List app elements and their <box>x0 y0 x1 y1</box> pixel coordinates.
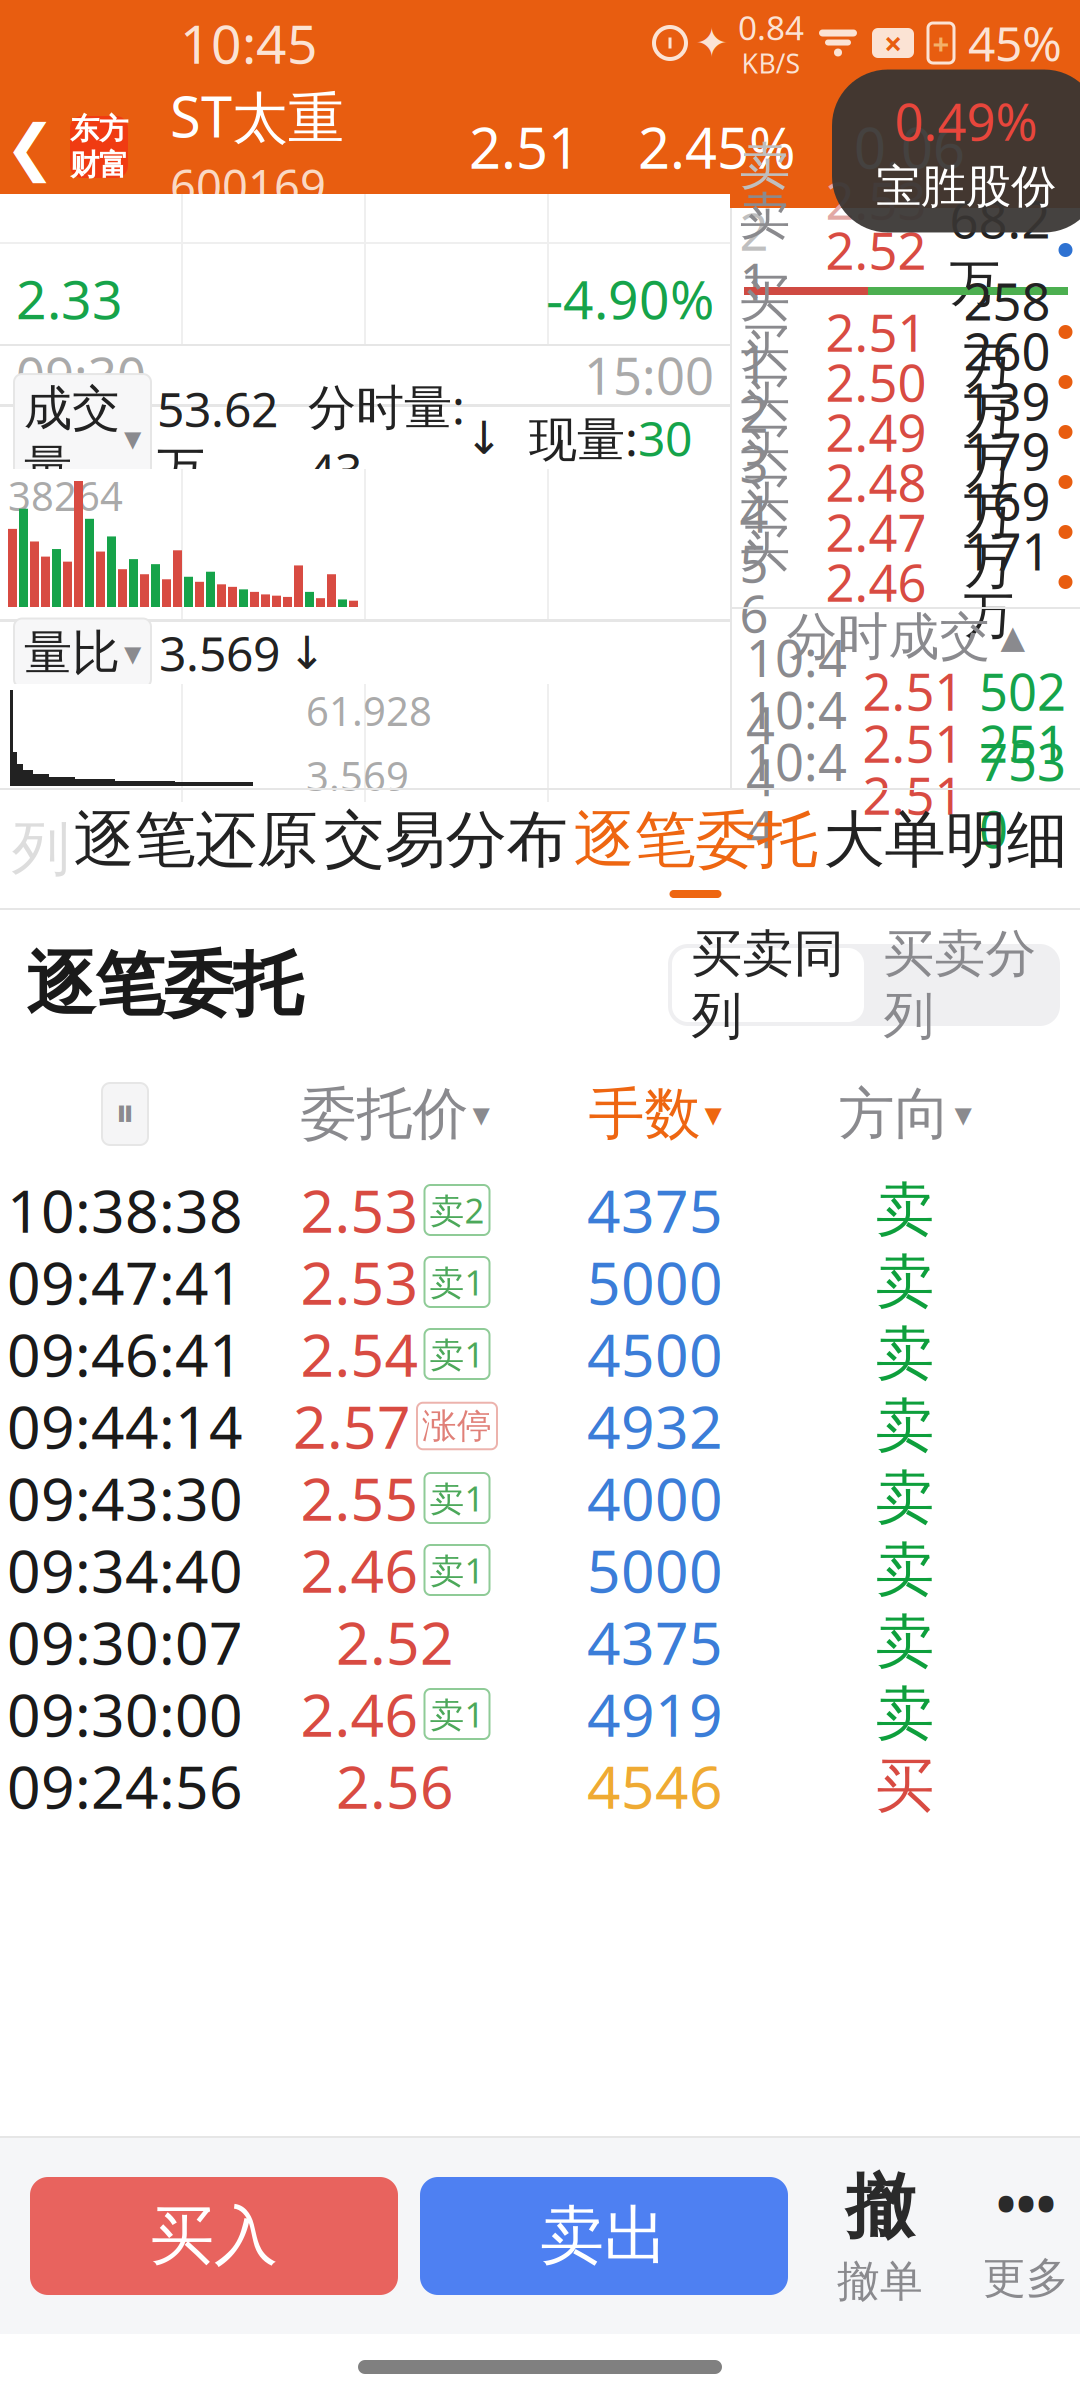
staticText: 30 <box>638 406 692 470</box>
button[interactable]: 量比 <box>14 618 151 687</box>
staticText: 卖2 <box>739 135 790 265</box>
staticText: 买4 <box>739 417 790 547</box>
staticText: 0.49% <box>894 87 1037 155</box>
staticText: ▾ <box>704 1094 721 1134</box>
staticText: 2.53 <box>300 1243 418 1321</box>
staticText: 涨停 <box>422 1405 492 1447</box>
staticText: 卖 <box>875 1318 934 1390</box>
staticText: 5000 <box>587 1243 723 1321</box>
staticText: 15:00 <box>584 341 714 409</box>
staticText: 宝胜股份 <box>876 159 1056 214</box>
staticText: 169万 <box>963 467 1050 597</box>
button[interactable]: 逐笔委托 <box>570 790 820 908</box>
staticText: 7530 <box>979 728 1066 862</box>
button[interactable]: 卖出 <box>420 2177 788 2295</box>
staticText: 卖出 <box>540 2197 668 2275</box>
staticText: 4000 <box>587 1459 723 1537</box>
staticText: 卖2 <box>429 1187 484 1233</box>
staticText: 卖1 <box>429 1691 484 1737</box>
staticText: 2.51 <box>469 110 580 184</box>
staticText: 卖1 <box>429 1547 484 1593</box>
staticText: 方向 <box>838 1080 950 1148</box>
button[interactable]: 09:47:41 <box>0 1246 1080 1318</box>
button[interactable]: 09:44:14 <box>0 1390 1080 1462</box>
staticText: 2.56 <box>336 1747 454 1825</box>
button[interactable]: 撤 <box>816 2168 944 2304</box>
button[interactable]: 逐笔还原 <box>70 790 320 908</box>
staticText: × <box>884 22 902 64</box>
staticText: 4500 <box>587 1315 723 1393</box>
staticText: ▾ <box>954 1094 971 1134</box>
staticText: ↓ <box>288 627 326 679</box>
staticText: 600169 <box>170 155 326 215</box>
staticText: 09:43:30 <box>7 1459 243 1537</box>
staticText: 卖 <box>875 1246 934 1318</box>
staticText: 财富 <box>70 147 128 183</box>
button[interactable]: 买卖分列 <box>864 948 1056 1022</box>
staticText: 09:46:41 <box>7 1315 243 1393</box>
staticText: 2.57 <box>293 1387 411 1465</box>
staticText: ▾ <box>472 1094 489 1134</box>
staticText: ❮ <box>4 112 55 182</box>
staticText: 卖 <box>875 1174 934 1246</box>
staticText: 2.49 <box>825 398 926 466</box>
staticText: 4375 <box>587 1603 723 1681</box>
staticText: 买1 <box>739 267 790 397</box>
button[interactable]: 东方财富 <box>70 116 128 178</box>
staticText: 卖 <box>875 1390 934 1462</box>
button[interactable]: 09:43:30 <box>0 1462 1080 1534</box>
staticText: 2.51 <box>862 657 963 725</box>
button[interactable]: 成交量 <box>14 374 151 502</box>
button[interactable]: 方向 <box>780 1064 1030 1164</box>
button[interactable]: 大单明细 <box>820 790 1070 908</box>
button[interactable]: ••• <box>962 2168 1080 2304</box>
staticText: 179万 <box>963 417 1050 547</box>
staticText: ▾ <box>124 418 141 458</box>
button[interactable]: 09:24:56 <box>0 1750 1080 1822</box>
staticText: ••• <box>996 2167 1056 2238</box>
button[interactable]: 交易分布 <box>320 790 570 908</box>
staticText: 258万 <box>963 267 1050 397</box>
button[interactable]: 09:30:00 <box>0 1678 1080 1750</box>
staticText: -4.90% <box>546 263 714 334</box>
staticText: 逐笔还原 <box>73 802 317 878</box>
button[interactable]: 委托价 <box>260 1064 530 1164</box>
staticText: 45% <box>968 11 1062 75</box>
staticText: 09:30:00 <box>7 1675 243 1753</box>
staticText: 买 <box>875 1750 934 1822</box>
staticText: 2.48 <box>825 448 926 516</box>
staticText: 10:44 <box>746 728 847 862</box>
staticText: 撤单 <box>837 2255 923 2308</box>
staticText: 卖 <box>875 1606 934 1678</box>
button[interactable]: 买卖同列 <box>672 948 864 1022</box>
staticText: 卖1 <box>429 1331 484 1377</box>
staticText: 4546 <box>587 1747 723 1825</box>
staticText: 09:44:14 <box>7 1387 243 1465</box>
button[interactable]: 买入 <box>30 2177 398 2295</box>
staticText: 买入 <box>150 2197 278 2275</box>
staticText: ST太重 <box>170 79 344 153</box>
staticText: 2.33 <box>16 263 123 334</box>
staticText: 10:45 <box>180 8 318 78</box>
button[interactable]: 09:46:41 <box>0 1318 1080 1390</box>
staticText: 手数 <box>588 1080 700 1148</box>
button[interactable]: 09:30:07 <box>0 1606 1080 1678</box>
staticText: 61.928 <box>306 684 432 737</box>
staticText: 买6 <box>739 517 790 647</box>
staticText: 2.52 <box>825 216 926 284</box>
staticText: 卖 <box>875 1678 934 1750</box>
staticText: 68.2万 <box>949 185 1050 315</box>
staticText: 2.52 <box>336 1603 454 1681</box>
staticText: ▾ <box>124 633 141 673</box>
button[interactable]: 10:38:38 <box>0 1174 1080 1246</box>
button[interactable]: 暂停 <box>102 1083 148 1145</box>
button[interactable]: 09:34:40 <box>0 1534 1080 1606</box>
staticText: 卖 <box>875 1462 934 1534</box>
staticText: 2.51 <box>825 298 926 366</box>
button[interactable]: 分时成交 <box>732 609 1080 665</box>
button[interactable]: 返回 <box>0 92 70 202</box>
staticText: ↓ <box>465 412 503 464</box>
staticText: 2.53 <box>300 1171 418 1249</box>
button[interactable]: 手数 <box>530 1064 780 1164</box>
staticText: 交易分布 <box>323 802 567 878</box>
